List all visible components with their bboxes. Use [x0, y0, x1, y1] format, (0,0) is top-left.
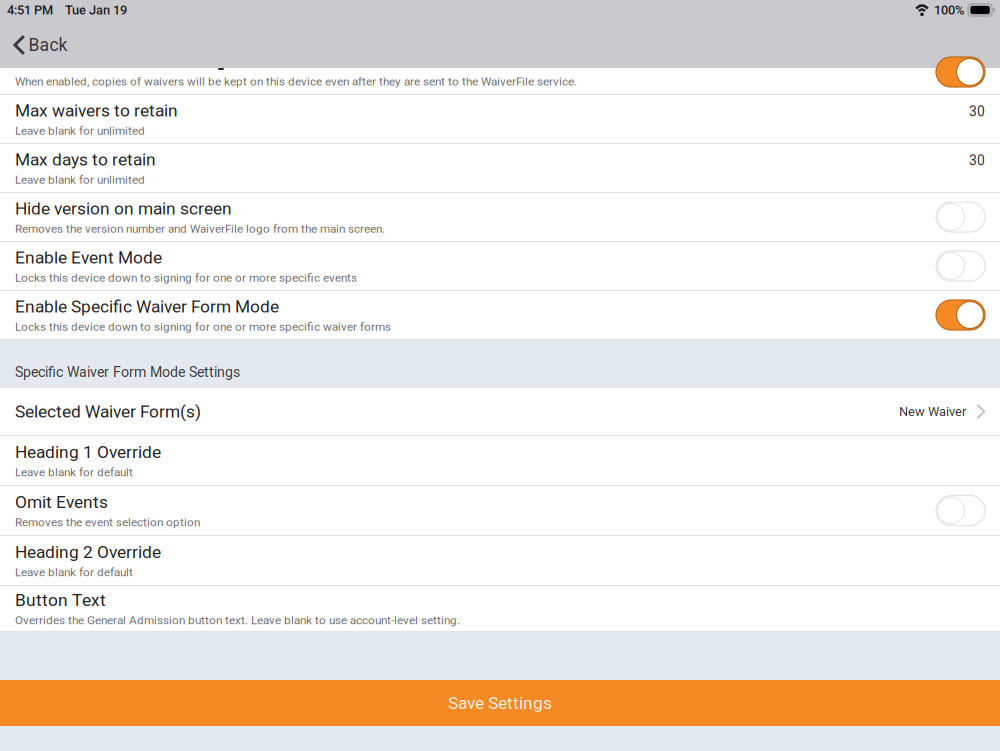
- staticText: 100%: [934, 2, 964, 17]
- button[interactable]: Omit Events: [936, 495, 985, 525]
- staticText: 30: [969, 103, 985, 120]
- staticText: Removes the event selection option: [15, 515, 200, 529]
- staticText: Locks this device down to signing for on…: [15, 271, 357, 285]
- staticText: Hide version on main screen: [15, 198, 232, 219]
- button[interactable]: Heading 2 Override: [0, 536, 1000, 586]
- button[interactable]: Save Settings: [0, 680, 1000, 726]
- staticText: 4:51 PM: [7, 2, 53, 17]
- button[interactable]: Max days to retain: [0, 144, 1000, 193]
- staticText: Heading 2 Override: [15, 542, 161, 562]
- staticText: Enable Event Mode: [15, 247, 162, 268]
- button[interactable]: Hide version on main screen: [936, 202, 985, 232]
- button[interactable]: Heading 1 Override: [0, 436, 1000, 486]
- staticText: Leave blank for unlimited: [15, 124, 145, 138]
- staticText: Max days to retain: [15, 149, 156, 170]
- button[interactable]: Hide version on main screen: [0, 193, 1000, 242]
- button[interactable]: Button Text: [0, 586, 1000, 632]
- button[interactable]: Enable Event Mode: [936, 251, 985, 281]
- staticText: 30: [969, 152, 985, 169]
- staticText: Leave blank for unlimited: [15, 173, 145, 187]
- staticText: Enable Specific Waiver Form Mode: [15, 296, 279, 317]
- staticText: When enabled, copies of waivers will be …: [15, 75, 577, 88]
- staticText: Button Text: [15, 590, 106, 610]
- staticText: Specific Waiver Form Mode Settings: [15, 364, 240, 381]
- staticText: Omit Events: [15, 492, 108, 512]
- button[interactable]: Enable Specific Waiver Form Mode: [936, 300, 985, 330]
- staticText: Max waivers to retain: [15, 100, 178, 121]
- button[interactable]: Keep copies of signed waivers: [936, 57, 985, 87]
- staticText: Save Settings: [448, 693, 552, 713]
- staticText: Selected Waiver Form(s): [15, 401, 201, 422]
- button[interactable]: Omit Events: [0, 486, 1000, 536]
- button[interactable]: Enable Event Mode: [0, 242, 1000, 291]
- staticText: Overrides the General Admission button t…: [15, 613, 460, 627]
- staticText: Locks this device down to signing for on…: [15, 320, 391, 334]
- staticText: Heading 1 Override: [15, 442, 161, 462]
- button[interactable]: Enable Specific Waiver Form Mode: [0, 291, 1000, 340]
- staticText: Leave blank for default: [15, 465, 133, 479]
- button[interactable]: Max waivers to retain: [0, 95, 1000, 144]
- staticText: Back: [29, 35, 68, 55]
- staticText: Leave blank for default: [15, 565, 133, 579]
- button[interactable]: Back: [0, 22, 78, 68]
- button[interactable]: Selected Waiver Form(s): [0, 388, 1000, 436]
- staticText: New Waiver: [899, 404, 966, 419]
- staticText: Removes the version number and WaiverFil…: [15, 222, 385, 236]
- staticText: Tue Jan 19: [65, 2, 127, 17]
